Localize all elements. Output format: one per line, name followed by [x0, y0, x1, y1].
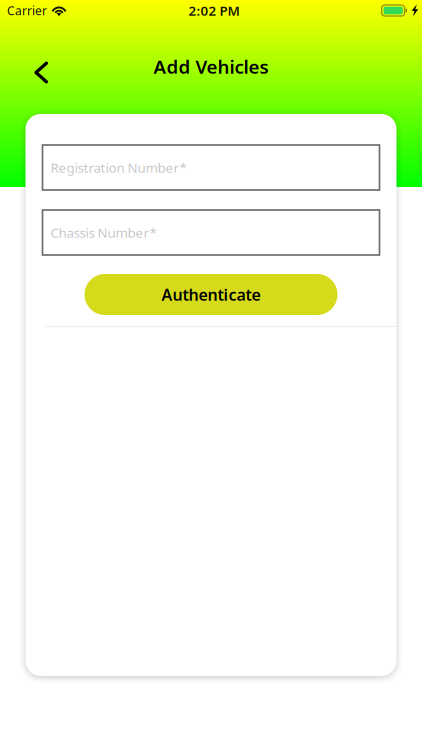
- staticText: Registration Number*: [50, 159, 186, 176]
- button[interactable]: Back: [19, 50, 63, 94]
- staticText: 2:02 PM: [188, 2, 239, 19]
- staticText: Chassis Number*: [50, 224, 156, 241]
- button[interactable]: Authenticate: [84, 274, 337, 315]
- staticText: Carrier: [7, 2, 47, 18]
- staticText: Authenticate: [161, 284, 260, 305]
- staticText: Add Vehicles: [153, 54, 268, 79]
